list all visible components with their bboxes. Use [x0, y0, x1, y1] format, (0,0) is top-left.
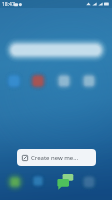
button[interactable]: Apps: [83, 175, 96, 188]
staticText: 18:47: [2, 1, 15, 8]
button[interactable]: Create new me...: [17, 149, 96, 166]
button[interactable]: App 2: [32, 75, 44, 87]
button[interactable]: Contacts: [32, 175, 45, 188]
button[interactable]: App 4: [83, 75, 95, 87]
button[interactable]: App 3: [58, 75, 70, 87]
button[interactable]: App 1: [8, 75, 20, 87]
button[interactable]: Phone: [8, 175, 21, 188]
button[interactable]: Messages: [56, 172, 76, 192]
staticText: Create new me...: [31, 154, 79, 162]
